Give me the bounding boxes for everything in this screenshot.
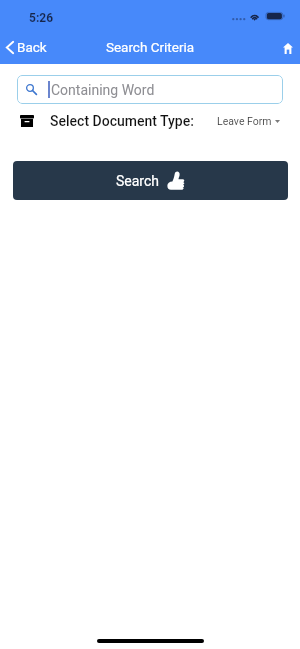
button[interactable]: Search — [13, 161, 288, 200]
staticText: 5:26 — [29, 11, 54, 25]
button[interactable]: Back — [4, 36, 49, 58]
button[interactable]: Home — [276, 36, 300, 60]
staticText: Containing Word — [51, 82, 155, 98]
staticText: Back — [17, 39, 47, 55]
staticText: Select Document Type: — [50, 113, 194, 129]
button[interactable]: Leave Form — [214, 115, 283, 127]
button[interactable]: Containing Word — [17, 75, 283, 104]
staticText: Search Criteria — [0, 39, 300, 55]
staticText: Leave Form — [217, 115, 272, 127]
staticText: Search — [116, 173, 160, 189]
